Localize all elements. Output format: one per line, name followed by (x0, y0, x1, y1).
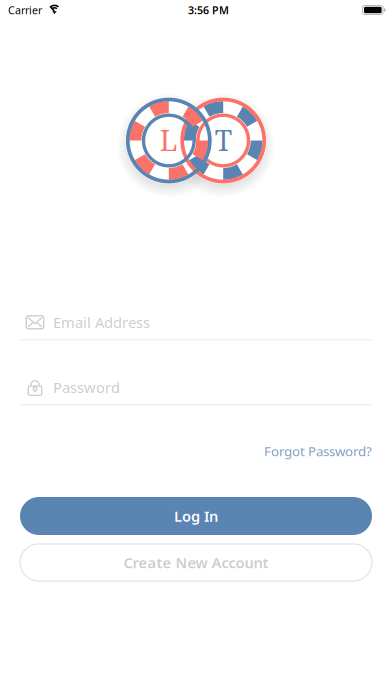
staticText: Create New Account (123, 553, 268, 572)
staticText: 3:56 PM (188, 3, 229, 17)
button[interactable]: Create New Account (20, 544, 372, 581)
button[interactable]: Forgot Password? (264, 436, 372, 466)
staticText: Forgot Password? (264, 442, 372, 460)
button[interactable]: Log In (20, 497, 372, 535)
staticText: Email Address (53, 313, 150, 332)
staticText: L (160, 121, 178, 159)
staticText: Log In (174, 506, 218, 526)
staticText: Password (53, 378, 120, 397)
staticText: T (215, 121, 232, 159)
staticText: Carrier (8, 3, 42, 17)
